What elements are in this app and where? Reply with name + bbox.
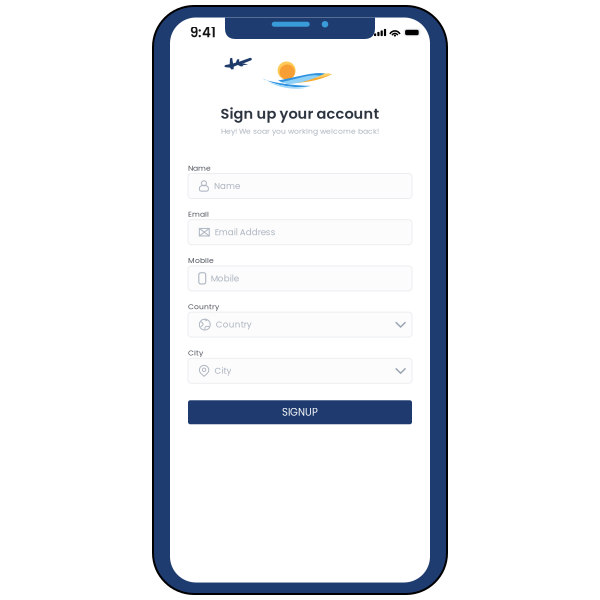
staticText: Email Address [215,226,276,238]
staticText: Sign up your account [220,103,379,124]
staticText: 9:41 [190,23,216,42]
button[interactable]: Email Address [188,220,412,245]
button[interactable]: Country [188,312,412,337]
button[interactable]: City [188,358,412,383]
staticText: Mobile [188,255,214,266]
staticText: Name [188,163,211,173]
staticText: Name [214,180,240,192]
staticText: SIGNUP [282,405,318,419]
button[interactable]: Mobile [188,266,412,291]
staticText: City [188,347,203,358]
button[interactable]: Name [188,173,412,198]
staticText: Country [188,301,219,312]
staticText: Country [216,318,252,331]
staticText: City [214,365,231,377]
staticText: Email [188,209,209,219]
staticText: Hey! We soar you working welcome back! [221,126,379,136]
button[interactable]: SIGNUP [188,400,412,424]
staticText: Mobile [211,272,239,284]
